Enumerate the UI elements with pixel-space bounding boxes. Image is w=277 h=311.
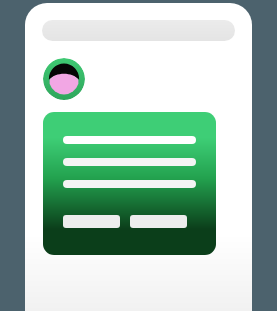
button[interactable]: Primary action bbox=[63, 215, 120, 228]
button[interactable]: Secondary action bbox=[130, 215, 187, 228]
button[interactable]: Search bbox=[42, 20, 235, 41]
button[interactable]: Profile bbox=[43, 58, 85, 100]
button[interactable]: Primary action bbox=[43, 112, 216, 255]
